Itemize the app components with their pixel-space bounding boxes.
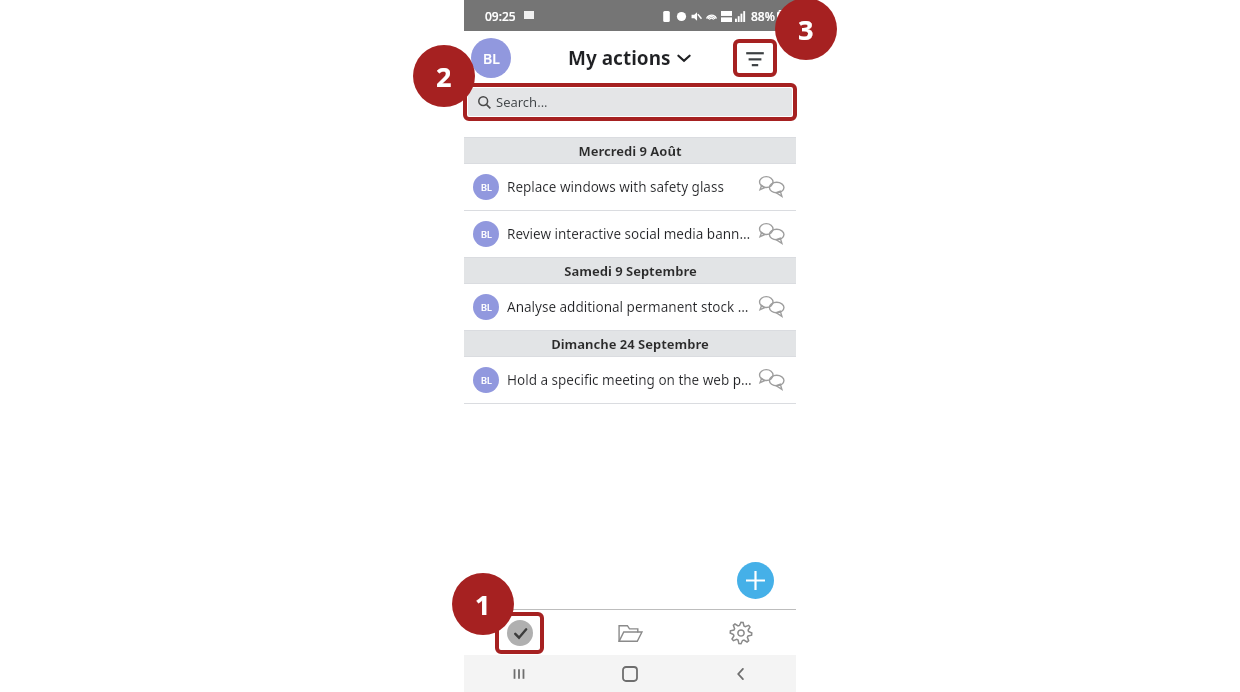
staticText: Replace windows with safety glass bbox=[507, 178, 753, 196]
button[interactable]: BL bbox=[471, 38, 511, 78]
button[interactable]: Comments bbox=[757, 365, 787, 395]
button[interactable]: Add bbox=[737, 562, 774, 599]
staticText: Search... bbox=[496, 93, 548, 111]
staticText: BL bbox=[481, 228, 492, 240]
staticText: 2 bbox=[436, 58, 452, 95]
button[interactable]: Comments bbox=[757, 219, 787, 249]
staticText: 09:25 bbox=[485, 8, 516, 24]
staticText: My actions bbox=[568, 45, 671, 71]
button[interactable]: Actions bbox=[497, 614, 542, 652]
button[interactable]: My actions bbox=[568, 45, 692, 71]
staticText: BL bbox=[481, 181, 492, 193]
staticText: Review interactive social media bann… bbox=[507, 225, 753, 243]
button[interactable]: Folders bbox=[610, 613, 650, 653]
button[interactable]: Comments bbox=[757, 172, 787, 202]
staticText: Hold a specific meeting on the web p… bbox=[507, 371, 753, 389]
button[interactable]: BL bbox=[464, 357, 796, 403]
button[interactable]: Comments bbox=[757, 292, 787, 322]
button[interactable]: Filter bbox=[735, 41, 775, 75]
staticText: 3 bbox=[798, 11, 814, 48]
staticText: BL bbox=[481, 301, 492, 313]
staticText: Analyse additional permanent stock a… bbox=[507, 298, 753, 316]
button[interactable]: BL bbox=[464, 284, 796, 330]
button[interactable]: BL bbox=[464, 164, 796, 210]
staticText: 88% bbox=[751, 8, 775, 24]
staticText: Samedi 9 Septembre bbox=[564, 262, 697, 280]
staticText: BL bbox=[483, 49, 500, 68]
staticText: Dimanche 24 Septembre bbox=[551, 335, 709, 353]
button[interactable]: BL bbox=[464, 211, 796, 257]
button[interactable]: Search... bbox=[468, 88, 792, 116]
staticText: 1 bbox=[475, 586, 491, 623]
staticText: BL bbox=[481, 374, 492, 386]
staticText: Mercredi 9 Août bbox=[578, 142, 682, 160]
button[interactable]: Settings bbox=[721, 613, 761, 653]
